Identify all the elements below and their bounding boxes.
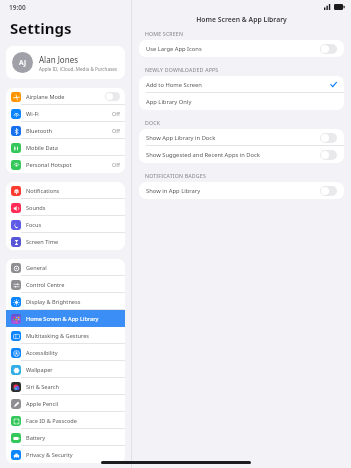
staticText: 19:00 — [9, 3, 26, 12]
button[interactable]: Show Suggested and Recent Apps in Dock — [139, 146, 344, 163]
staticText: Personal Hotspot — [26, 161, 72, 169]
button[interactable]: Toggle — [320, 44, 337, 54]
button[interactable]: Screen Time — [6, 233, 125, 250]
button[interactable]: Airplane Mode — [6, 88, 125, 105]
staticText: Apple ID, iCloud, Media & Purchases — [39, 66, 117, 72]
other: Selected — [330, 81, 337, 88]
button[interactable]: App Library Only — [139, 93, 344, 110]
staticText: General — [26, 264, 47, 272]
staticText: Off — [112, 161, 120, 168]
button[interactable]: Accessibility — [6, 344, 125, 361]
staticText: Sounds — [26, 204, 46, 212]
button[interactable]: Show in App Library — [139, 182, 344, 199]
button[interactable]: Toggle — [105, 92, 120, 101]
button[interactable]: Battery — [6, 429, 125, 446]
button[interactable]: Toggle — [320, 150, 337, 160]
staticText: Settings — [10, 18, 72, 38]
button[interactable]: Focus — [6, 216, 125, 233]
button[interactable]: Home Screen & App Library — [6, 310, 125, 327]
staticText: Alan Jones — [39, 54, 78, 65]
button[interactable]: Apple Pencil — [6, 395, 125, 412]
staticText: Show in App Library — [146, 187, 201, 195]
staticText: Display & Brightness — [26, 298, 81, 306]
staticText: Multitasking & Gestures — [26, 332, 90, 340]
button[interactable]: General — [6, 259, 125, 276]
button[interactable]: Toggle — [320, 133, 337, 143]
button[interactable]: Sounds — [6, 199, 125, 216]
staticText: Wallpaper — [26, 366, 53, 374]
button[interactable]: Multitasking & Gestures — [6, 327, 125, 344]
button[interactable]: Display & Brightness — [6, 293, 125, 310]
button[interactable]: AJ — [6, 46, 125, 79]
staticText: Airplane Mode — [26, 93, 65, 101]
staticText: Home Screen & App Library — [196, 15, 287, 24]
button[interactable]: Mobile Data — [6, 139, 125, 156]
button[interactable]: Privacy & Security — [6, 446, 125, 463]
staticText: DOCK — [145, 119, 161, 126]
staticText: App Library Only — [146, 98, 192, 106]
staticText: Off — [112, 127, 120, 134]
staticText: Siri & Search — [26, 383, 59, 391]
button[interactable]: Add to Home Screen — [139, 76, 344, 93]
button[interactable]: Toggle — [320, 186, 337, 196]
staticText: Bluetooth — [26, 127, 52, 135]
button[interactable]: Control Centre — [6, 276, 125, 293]
staticText: AJ — [19, 58, 26, 68]
button[interactable]: Siri & Search — [6, 378, 125, 395]
staticText: Screen Time — [26, 238, 59, 246]
button[interactable]: Notifications — [6, 182, 125, 199]
button[interactable]: Bluetooth — [6, 122, 125, 139]
staticText: Off — [112, 110, 120, 117]
button[interactable]: Wallpaper — [6, 361, 125, 378]
staticText: Apple Pencil — [26, 400, 59, 408]
staticText: Focus — [26, 221, 42, 229]
staticText: NOTIFICATION BADGES — [145, 172, 206, 179]
staticText: Use Large App Icons — [146, 45, 202, 53]
button[interactable]: Personal Hotspot — [6, 156, 125, 173]
button[interactable]: Wi-Fi — [6, 105, 125, 122]
staticText: Battery — [26, 434, 46, 442]
staticText: Notifications — [26, 187, 60, 195]
staticText: Add to Home Screen — [146, 81, 202, 89]
staticText: Face ID & Passcode — [26, 417, 77, 425]
staticText: HOME SCREEN — [145, 30, 184, 37]
staticText: Show App Library in Dock — [146, 134, 216, 142]
button[interactable]: Use Large App Icons — [139, 40, 344, 57]
staticText: NEWLY DOWNLOADED APPS — [145, 66, 219, 73]
staticText: Privacy & Security — [26, 451, 73, 459]
staticText: Show Suggested and Recent Apps in Dock — [146, 151, 260, 159]
staticText: Mobile Data — [26, 144, 58, 152]
staticText: Accessibility — [26, 349, 58, 357]
staticText: Home Screen & App Library — [26, 315, 99, 323]
button[interactable]: Show App Library in Dock — [139, 129, 344, 146]
staticText: Control Centre — [26, 281, 65, 289]
button[interactable]: Face ID & Passcode — [6, 412, 125, 429]
staticText: Wi-Fi — [26, 110, 39, 118]
